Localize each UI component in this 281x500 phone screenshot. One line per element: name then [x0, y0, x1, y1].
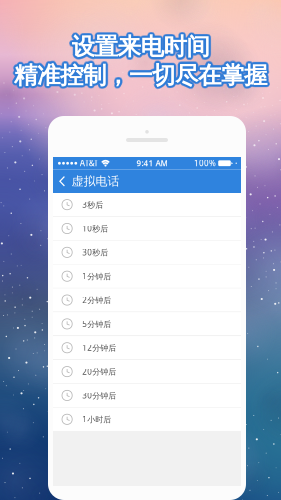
staticText: 设置来电时间: [69, 31, 207, 60]
staticText: 精准控制，一切尽在掌握: [15, 61, 268, 91]
staticText: 精准控制，一切尽在掌握: [15, 62, 268, 91]
staticText: 精准控制，一切尽在掌握: [16, 59, 269, 89]
staticText: 精准控制，一切尽在掌握: [15, 59, 268, 89]
staticText: 设置来电时间: [73, 32, 211, 62]
staticText: 精准控制，一切尽在掌握: [15, 60, 268, 89]
staticText: 1小时后: [82, 414, 111, 425]
button[interactable]: Back: [53, 171, 71, 192]
staticText: 设置来电时间: [69, 32, 207, 62]
button[interactable]: 5分钟后: [53, 312, 241, 335]
staticText: 设置来电时间: [74, 31, 212, 60]
staticText: 30分钟后: [82, 390, 116, 401]
staticText: 20分钟后: [82, 366, 116, 377]
staticText: 设置来电时间: [70, 32, 208, 62]
staticText: 设置来电时间: [71, 32, 209, 62]
button[interactable]: 20分钟后: [53, 360, 241, 383]
button[interactable]: 30秒后: [53, 241, 241, 264]
staticText: 设置来电时间: [74, 33, 212, 63]
button[interactable]: 1小时后: [53, 408, 241, 431]
staticText: 精准控制，一切尽在掌握: [14, 63, 267, 93]
staticText: 设置来电时间: [73, 31, 211, 61]
staticText: 精准控制，一切尽在掌握: [14, 59, 267, 89]
staticText: 精准控制，一切尽在掌握: [13, 60, 266, 89]
staticText: 设置来电时间: [73, 33, 211, 62]
staticText: 设置来电时间: [71, 31, 209, 60]
staticText: 精准控制，一切尽在掌握: [16, 62, 269, 91]
staticText: 设置来电时间: [71, 34, 209, 64]
staticText: 设置来电时间: [70, 30, 208, 59]
staticText: 设置来电时间: [71, 33, 209, 63]
staticText: 精准控制，一切尽在掌握: [15, 58, 268, 88]
staticText: 10秒后: [82, 223, 108, 234]
staticText: 12分钟后: [82, 342, 116, 353]
button[interactable]: 3秒后: [53, 193, 241, 216]
staticText: 精准控制，一切尽在掌握: [13, 62, 266, 91]
staticText: 设置来电时间: [71, 33, 209, 63]
button[interactable]: 10秒后: [53, 217, 241, 240]
staticText: 100%: [194, 158, 216, 168]
staticText: AT&T: [80, 158, 98, 168]
staticText: 设置来电时间: [73, 34, 211, 64]
staticText: 精准控制，一切尽在掌握: [15, 63, 268, 92]
staticText: 精准控制，一切尽在掌握: [12, 59, 265, 89]
staticText: 9:41 AM: [136, 158, 167, 168]
staticText: 设置来电时间: [70, 34, 208, 64]
staticText: 设置来电时间: [71, 31, 209, 60]
staticText: 设置来电时间: [70, 33, 208, 62]
staticText: 1分钟后: [82, 271, 111, 282]
staticText: 精准控制，一切尽在掌握: [14, 61, 267, 90]
button[interactable]: 12分钟后: [53, 336, 241, 359]
staticText: 精准控制，一切尽在掌握: [13, 63, 266, 92]
button[interactable]: 1分钟后: [53, 265, 241, 288]
staticText: 设置来电时间: [72, 33, 210, 63]
staticText: 设置来电时间: [73, 30, 211, 59]
staticText: 3秒后: [82, 199, 103, 210]
staticText: 精准控制，一切尽在掌握: [14, 58, 267, 88]
staticText: 30秒后: [82, 247, 108, 258]
staticText: 精准控制，一切尽在掌握: [15, 61, 268, 90]
staticText: 精准控制，一切尽在掌握: [12, 61, 265, 90]
staticText: 设置来电时间: [71, 30, 209, 59]
staticText: 精准控制，一切尽在掌握: [14, 62, 267, 92]
button[interactable]: 2分钟后: [53, 288, 241, 312]
staticText: 精准控制，一切尽在掌握: [13, 59, 266, 89]
staticText: 设置来电时间: [69, 33, 207, 63]
staticText: 精准控制，一切尽在掌握: [12, 62, 265, 91]
staticText: 5分钟后: [82, 318, 111, 329]
button[interactable]: 30分钟后: [53, 384, 241, 407]
staticText: 精准控制，一切尽在掌握: [16, 61, 269, 90]
staticText: 设置来电时间: [72, 31, 210, 60]
staticText: 虚拟电话: [71, 174, 119, 189]
staticText: 设置来电时间: [74, 32, 212, 62]
staticText: 设置来电时间: [70, 31, 208, 61]
staticText: 精准控制，一切尽在掌握: [13, 61, 266, 90]
staticText: 2分钟后: [82, 295, 111, 305]
staticText: 精准控制，一切尽在掌握: [13, 61, 266, 91]
staticText: 精准控制，一切尽在掌握: [13, 58, 266, 88]
